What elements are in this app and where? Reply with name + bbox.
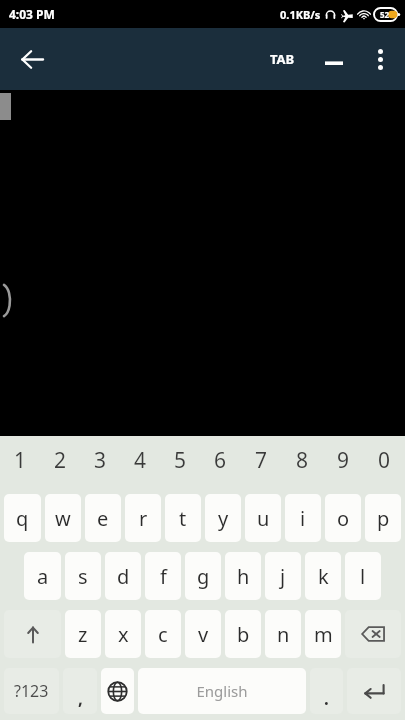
staticText: , <box>78 687 83 710</box>
button[interactable]: 2 <box>40 438 80 482</box>
staticText: g <box>197 563 210 590</box>
button[interactable]: , <box>63 668 97 714</box>
button[interactable]: 6 <box>200 438 241 482</box>
staticText: 8 <box>296 446 309 475</box>
staticText: 0 <box>378 446 391 475</box>
button[interactable]: Shift <box>4 610 61 658</box>
button[interactable]: 9 <box>323 438 364 482</box>
button[interactable]: m <box>305 610 341 658</box>
staticText: w <box>55 505 71 532</box>
staticText: e <box>97 505 109 532</box>
staticText: 5 <box>174 446 187 475</box>
button[interactable]: More options <box>359 38 401 80</box>
button[interactable]: x <box>105 610 141 658</box>
button[interactable]: j <box>265 552 301 600</box>
button[interactable]: Minimize <box>313 38 355 80</box>
button[interactable]: . <box>310 668 343 714</box>
staticText: 6 <box>214 446 227 475</box>
staticText: h <box>237 563 250 590</box>
staticText: f <box>160 563 167 590</box>
button[interactable]: 4 <box>120 438 160 482</box>
button[interactable]: 3 <box>80 438 120 482</box>
button[interactable]: w <box>45 494 81 542</box>
staticText: 0.1KB/s <box>280 7 321 22</box>
staticText: 7 <box>255 446 268 475</box>
staticText: v <box>198 621 209 648</box>
button[interactable]: 5 <box>160 438 200 482</box>
staticText: 3 <box>94 446 107 475</box>
staticText: n <box>277 621 290 648</box>
button[interactable]: 8 <box>282 438 323 482</box>
button[interactable]: i <box>285 494 321 542</box>
staticText: English <box>196 681 248 701</box>
staticText: o <box>337 505 350 532</box>
button[interactable]: n <box>265 610 301 658</box>
staticText: j <box>280 563 286 590</box>
button[interactable]: ?123 <box>4 668 59 714</box>
button[interactable]: t <box>165 494 201 542</box>
staticText: ?123 <box>14 680 49 702</box>
staticText: 52 <box>380 9 390 20</box>
staticText: 4 <box>134 446 147 475</box>
staticText: u <box>257 505 270 532</box>
staticText: 4:03 PM <box>9 6 55 22</box>
button[interactable]: c <box>145 610 181 658</box>
button[interactable]: v <box>185 610 221 658</box>
staticText: p <box>377 505 390 532</box>
button[interactable]: l <box>345 552 381 600</box>
button[interactable]: 0 <box>364 438 405 482</box>
button[interactable]: 1 <box>0 438 40 482</box>
button[interactable]: Enter <box>347 668 401 714</box>
staticText: z <box>78 621 88 648</box>
staticText: x <box>118 621 129 648</box>
button[interactable]: Back <box>10 37 54 81</box>
staticText: 2 <box>54 446 67 475</box>
button[interactable]: p <box>365 494 401 542</box>
staticText: b <box>237 621 250 648</box>
staticText: 9 <box>337 446 350 475</box>
staticText: . <box>324 687 329 710</box>
staticText: c <box>158 621 168 648</box>
button[interactable]: o <box>325 494 361 542</box>
button[interactable]: f <box>145 552 181 600</box>
staticText: 1 <box>14 446 27 475</box>
button[interactable]: b <box>225 610 261 658</box>
button[interactable]: r <box>125 494 161 542</box>
staticText: a <box>37 563 49 590</box>
staticText: d <box>117 563 130 590</box>
staticText: i <box>300 505 306 532</box>
button[interactable]: e <box>85 494 121 542</box>
button[interactable]: q <box>4 494 41 542</box>
staticText: m <box>314 621 333 648</box>
button[interactable]: k <box>305 552 341 600</box>
button[interactable]: z <box>65 610 101 658</box>
button[interactable]: g <box>185 552 221 600</box>
staticText: l <box>360 563 366 590</box>
button[interactable]: s <box>65 552 101 600</box>
staticText: TAB <box>270 50 295 68</box>
button[interactable]: TAB <box>264 35 301 83</box>
button[interactable]: English <box>138 668 306 714</box>
button[interactable]: h <box>225 552 261 600</box>
staticText: y <box>218 505 229 532</box>
button[interactable]: d <box>105 552 141 600</box>
staticText: t <box>179 505 187 532</box>
button[interactable]: y <box>205 494 241 542</box>
staticText: r <box>139 505 148 532</box>
button[interactable]: a <box>24 552 61 600</box>
staticText: s <box>78 563 88 590</box>
button[interactable]: 7 <box>241 438 282 482</box>
button[interactable]: u <box>245 494 281 542</box>
staticText: k <box>318 563 329 590</box>
staticText: q <box>16 505 29 532</box>
button[interactable]: Backspace <box>345 610 401 658</box>
button[interactable]: Change language <box>101 668 134 714</box>
